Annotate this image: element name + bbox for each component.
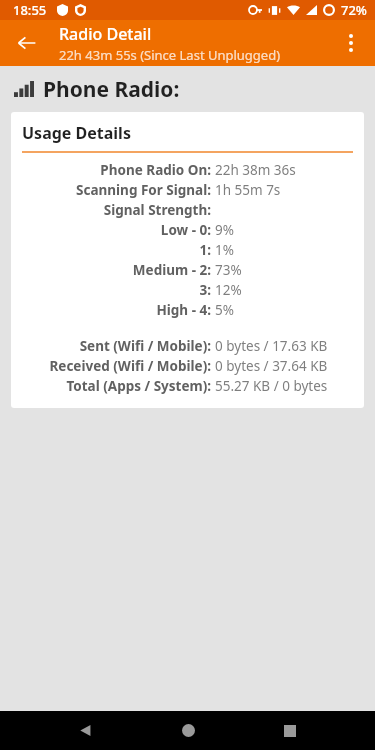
staticText: Phone Radio:	[43, 75, 180, 104]
button[interactable]: Recent apps	[267, 711, 313, 750]
staticText: Medium - 2:	[132, 261, 211, 279]
staticText: 0 bytes / 37.64 KB	[215, 357, 328, 375]
staticText: Usage Details	[22, 122, 131, 144]
button[interactable]: Back	[62, 711, 108, 750]
staticText: 1%	[215, 241, 234, 259]
staticText: 0 bytes / 17.63 KB	[215, 337, 328, 355]
staticText: 3:	[199, 281, 211, 299]
staticText: Phone Radio On:	[100, 161, 211, 179]
staticText: Signal Strength:	[103, 201, 211, 219]
staticText: Radio Detail	[59, 23, 152, 45]
staticText: Scanning For Signal:	[76, 181, 211, 199]
staticText: High - 4:	[156, 301, 211, 319]
staticText: Received (Wifi / Mobile):	[49, 357, 211, 375]
staticText: 5%	[215, 301, 234, 319]
staticText: 12%	[215, 281, 242, 299]
staticText: 55.27 KB / 0 bytes	[215, 377, 328, 395]
staticText: Low - 0:	[160, 221, 211, 239]
staticText: 1:	[199, 241, 211, 259]
button[interactable]: More options	[331, 23, 371, 63]
staticText: Total (Apps / System):	[66, 377, 211, 395]
staticText: Sent (Wifi / Mobile):	[79, 337, 211, 355]
staticText: 73%	[215, 261, 242, 279]
staticText: 1h 55m 7s	[215, 181, 281, 199]
staticText: 18:55	[13, 1, 47, 19]
staticText: 72%	[341, 1, 367, 19]
staticText: 22h 43m 55s (Since Last Unplugged)	[59, 46, 281, 64]
staticText: 22h 38m 36s	[215, 161, 296, 179]
staticText: 9%	[215, 221, 234, 239]
button[interactable]: Home	[165, 711, 211, 750]
button[interactable]: Back	[8, 24, 46, 62]
